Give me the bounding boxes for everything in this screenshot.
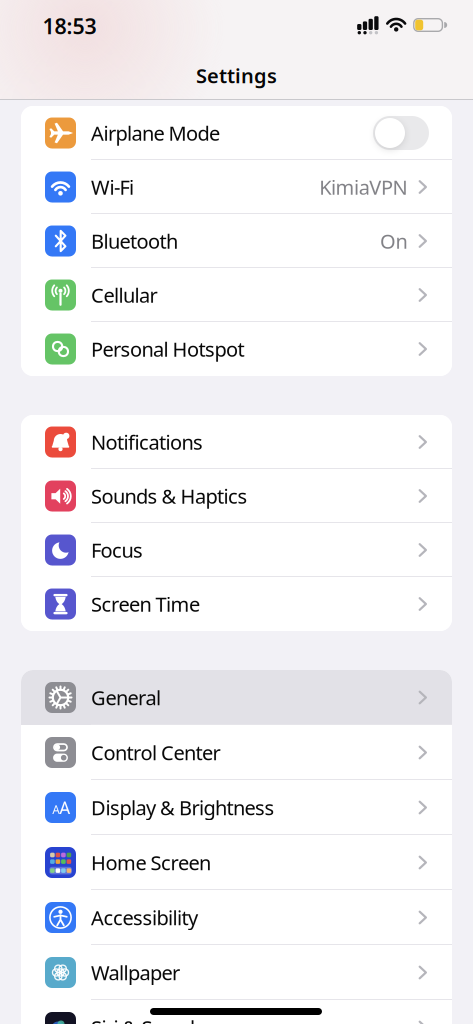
button[interactable]: A [21,780,452,835]
staticText: On [380,228,407,254]
staticText: Control Center [91,739,220,766]
staticText: Home Screen [91,849,211,876]
staticText: A [52,802,60,817]
staticText: Notifications [91,429,203,455]
staticText: Focus [91,537,143,563]
staticText: Wallpaper [91,959,180,986]
button[interactable]: Screen Time [21,577,452,631]
staticText: Personal Hotspot [91,336,244,362]
button[interactable]: Siri & Search [21,1000,452,1024]
staticText: Sounds & Haptics [91,483,247,509]
button[interactable]: Notifications [21,415,452,469]
staticText: Screen Time [91,591,200,617]
button[interactable]: Home Screen [21,835,452,890]
button[interactable]: Wi-Fi [21,160,452,214]
button[interactable]: General [21,670,452,725]
staticText: Bluetooth [91,228,178,254]
staticText: 18:53 [42,12,96,40]
button[interactable]: Bluetooth [21,214,452,268]
staticText: Siri & Search [91,1014,202,1024]
staticText: Wi-Fi [91,174,134,200]
staticText: A [59,796,70,819]
staticText: KimiaVPN [319,174,407,200]
staticText: Accessibility [91,904,198,931]
button[interactable]: Sounds & Haptics [21,469,452,523]
staticText: Settings [196,62,277,89]
button[interactable]: Airplane Mode [21,106,452,160]
staticText: Airplane Mode [91,120,220,146]
staticText: Cellular [91,282,157,308]
button[interactable]: Focus [21,523,452,577]
staticText: Display & Brightness [91,794,274,821]
staticText: General [91,684,161,711]
button[interactable]: Cellular [21,268,452,322]
button[interactable]: Wallpaper [21,945,452,1000]
button[interactable]: Accessibility [21,890,452,945]
button[interactable]: Control Center [21,725,452,780]
button[interactable]: Airplane Mode [373,116,429,150]
button[interactable]: Personal Hotspot [21,322,452,376]
